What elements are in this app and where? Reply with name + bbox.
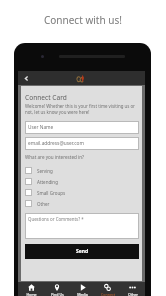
button[interactable]: Back <box>18 71 34 85</box>
button[interactable]: Attending <box>25 176 139 187</box>
button[interactable]: Small Groups <box>25 187 139 198</box>
staticText: Other <box>37 201 50 207</box>
staticText: Find Us <box>51 292 64 296</box>
staticText: Media <box>77 292 88 296</box>
button[interactable]: User Name <box>25 121 139 134</box>
staticText: Welcome! Whether this is your first time… <box>25 103 139 115</box>
staticText: Serving <box>37 168 53 174</box>
staticText: Connect <box>101 292 115 296</box>
staticText: email.address@user.com <box>28 140 84 147</box>
staticText: Home <box>26 292 37 296</box>
staticText: Connect with us! <box>44 13 122 27</box>
staticText: Small Groups <box>37 190 66 196</box>
button[interactable]: Other <box>120 282 145 296</box>
button[interactable]: Questions or Comments? * <box>25 213 139 239</box>
staticText: Connect Card <box>25 93 67 102</box>
button[interactable]: Home <box>18 282 44 296</box>
button[interactable]: Send <box>25 244 139 259</box>
staticText: Send <box>76 248 89 255</box>
button[interactable]: Find Us <box>44 282 70 296</box>
staticText: What are you interested in? <box>25 154 85 160</box>
button[interactable]: Connect <box>95 282 120 296</box>
staticText: User Name <box>28 124 54 131</box>
staticText: Questions or Comments? * <box>28 216 84 222</box>
staticText: Attending <box>37 179 58 185</box>
button[interactable]: email.address@user.com <box>25 137 139 150</box>
button[interactable]: Serving <box>25 165 139 176</box>
button[interactable]: Media <box>70 282 95 296</box>
button[interactable]: Other <box>25 198 139 209</box>
staticText: Other <box>128 292 138 296</box>
